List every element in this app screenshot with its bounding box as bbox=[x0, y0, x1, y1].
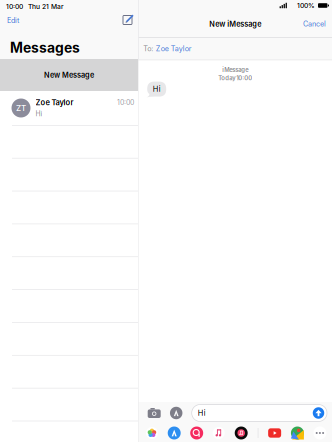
button[interactable]: Cancel bbox=[295, 14, 332, 34]
button[interactable]: Photos bbox=[146, 427, 158, 439]
staticText: ZT bbox=[16, 103, 26, 113]
staticText: Today 10:00 bbox=[218, 74, 252, 82]
button[interactable]: More bbox=[313, 426, 326, 439]
button[interactable]: Zoe Taylor bbox=[156, 44, 192, 53]
button[interactable]: ZT bbox=[0, 91, 138, 125]
button[interactable]: YouTube bbox=[268, 428, 281, 438]
staticText: 10:00 bbox=[117, 98, 134, 107]
staticText: Zoe Taylor bbox=[156, 44, 192, 53]
button[interactable]: Maps bbox=[291, 426, 304, 439]
staticText: Thu 21 Mar bbox=[28, 2, 64, 11]
staticText: Edit bbox=[7, 16, 19, 25]
button[interactable]: New Message bbox=[117, 13, 138, 27]
button[interactable]: Edit bbox=[0, 13, 26, 27]
staticText: New iMessage bbox=[209, 20, 261, 28]
button[interactable]: Camera bbox=[148, 407, 161, 418]
staticText: Messages bbox=[10, 39, 80, 56]
staticText: Cancel bbox=[303, 20, 326, 28]
staticText: Hi bbox=[153, 85, 161, 94]
button[interactable]: New Message bbox=[0, 59, 138, 91]
button[interactable]: App Store bbox=[170, 406, 183, 419]
staticText: Hi bbox=[35, 110, 42, 118]
button[interactable]: Music bbox=[213, 427, 225, 439]
button[interactable]: Send bbox=[312, 407, 324, 419]
button[interactable]: Apple Music bbox=[234, 426, 248, 440]
staticText: New Message bbox=[44, 71, 94, 79]
staticText: Zoe Taylor bbox=[35, 98, 73, 107]
staticText: 10:00 bbox=[6, 2, 23, 11]
staticText: 100% bbox=[297, 1, 315, 10]
staticText: Hi bbox=[198, 408, 206, 417]
staticText: To: bbox=[143, 44, 153, 53]
button[interactable]: Images bbox=[190, 426, 203, 439]
staticText: iMessage bbox=[222, 66, 248, 73]
button[interactable]: App Store bbox=[168, 426, 181, 439]
